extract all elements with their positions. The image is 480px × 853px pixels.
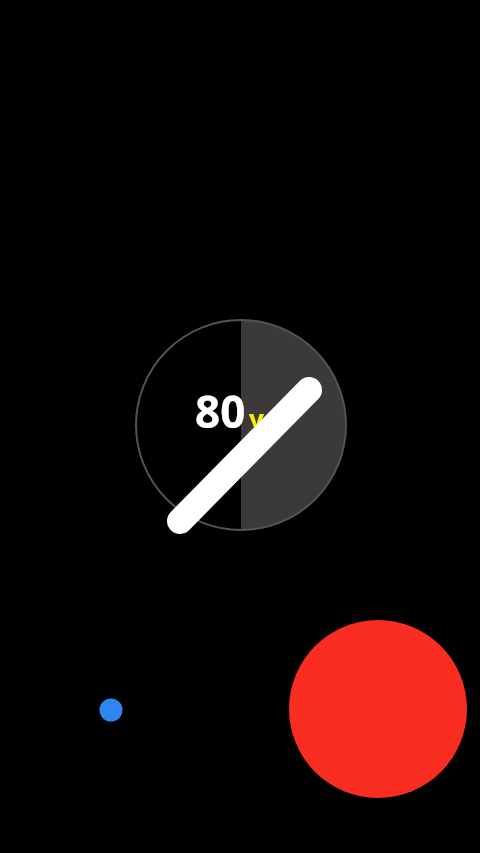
button[interactable]: Gauge canvas bbox=[0, 0, 480, 853]
